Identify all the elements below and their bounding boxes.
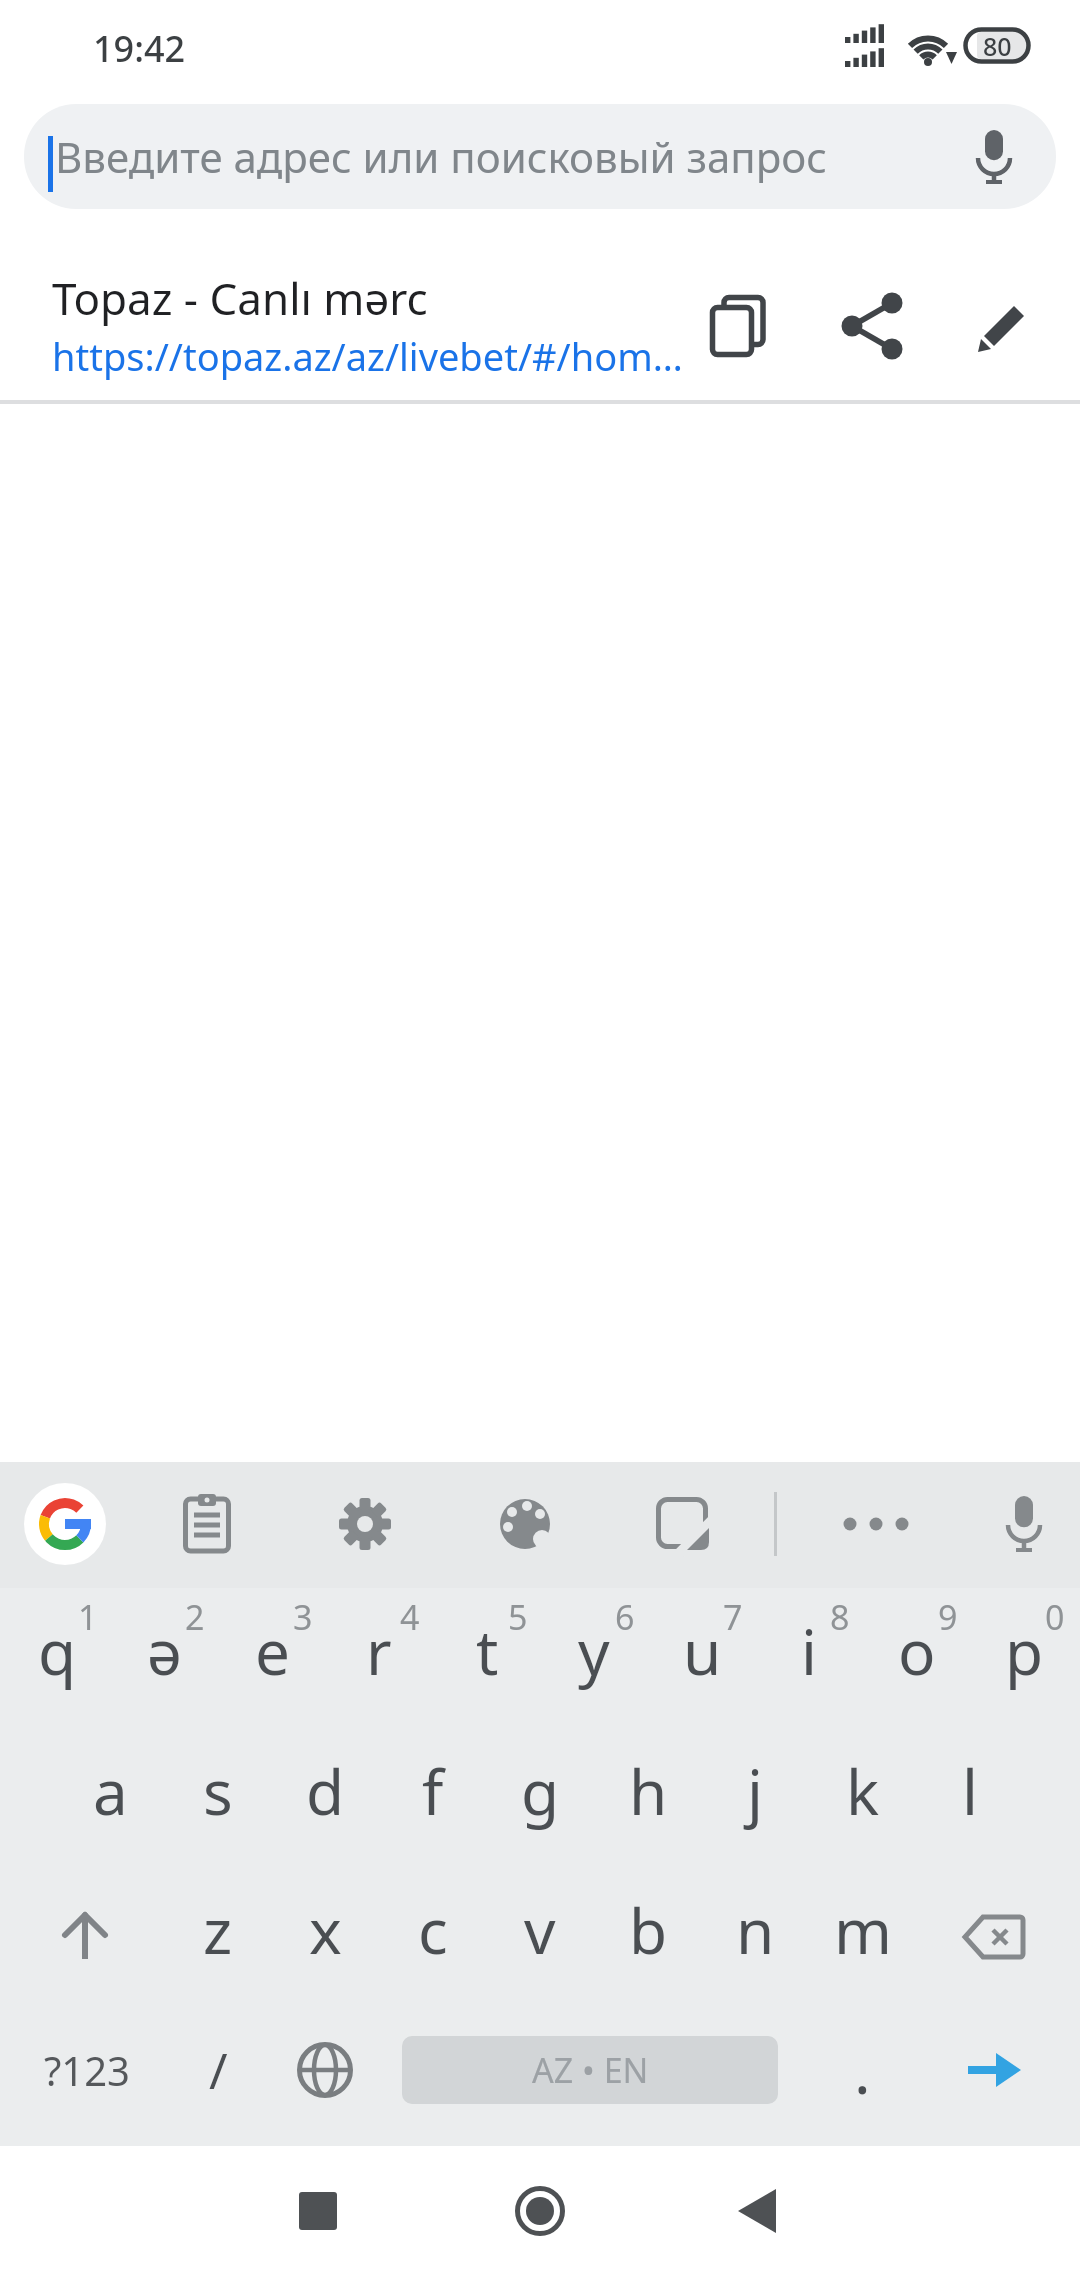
staticText: k bbox=[846, 1749, 880, 1833]
button[interactable]: j bbox=[701, 1721, 809, 1860]
staticText: 1 bbox=[78, 1594, 98, 1634]
staticText: i bbox=[801, 1609, 817, 1693]
button[interactable] bbox=[966, 288, 1042, 364]
staticText: 9 bbox=[938, 1594, 958, 1634]
button[interactable] bbox=[24, 1483, 106, 1565]
button[interactable] bbox=[986, 1486, 1062, 1562]
button[interactable]: u bbox=[648, 1581, 756, 1721]
staticText: f bbox=[422, 1749, 444, 1833]
button[interactable]: h bbox=[594, 1721, 702, 1860]
button[interactable]: z bbox=[164, 1860, 272, 2000]
staticText: y bbox=[578, 1609, 610, 1693]
staticText: 8 bbox=[830, 1594, 850, 1634]
staticText: https://topaz.az/az/livebet/#/hom… bbox=[52, 330, 683, 382]
button[interactable]: k bbox=[809, 1721, 917, 1860]
staticText: l bbox=[962, 1749, 978, 1833]
staticText: p bbox=[1005, 1609, 1044, 1693]
button[interactable] bbox=[291, 2184, 345, 2238]
button[interactable]: c bbox=[379, 1860, 487, 2000]
staticText: g bbox=[521, 1749, 560, 1833]
button[interactable] bbox=[932, 2000, 1056, 2139]
staticText: Topaz - Canlı mərc bbox=[52, 268, 428, 328]
staticText: ?123 bbox=[44, 2043, 130, 2097]
button[interactable]: a bbox=[56, 1721, 164, 1860]
button[interactable]: Введите адрес или поисковый запрос bbox=[24, 104, 1056, 209]
button[interactable]: f bbox=[379, 1721, 487, 1860]
button[interactable]: . bbox=[808, 2000, 916, 2139]
staticText: x bbox=[309, 1888, 342, 1972]
staticText: Введите адрес или поисковый запрос bbox=[55, 128, 828, 185]
button[interactable]: n bbox=[701, 1860, 809, 2000]
staticText: 6 bbox=[615, 1594, 635, 1634]
staticText: q bbox=[38, 1609, 77, 1693]
staticText: / bbox=[209, 2036, 228, 2104]
button[interactable]: e bbox=[218, 1581, 326, 1721]
button[interactable]: d bbox=[271, 1721, 379, 1860]
button[interactable]: s bbox=[164, 1721, 272, 1860]
button[interactable]: g bbox=[486, 1721, 594, 1860]
staticText: 3 bbox=[293, 1594, 313, 1634]
button[interactable] bbox=[700, 288, 776, 364]
staticText: d bbox=[306, 1749, 345, 1833]
button[interactable]: y bbox=[540, 1581, 648, 1721]
button[interactable]: / bbox=[164, 2000, 272, 2139]
button[interactable]: b bbox=[594, 1860, 702, 2000]
button[interactable]: ?123 bbox=[23, 2000, 151, 2139]
staticText: e bbox=[255, 1609, 290, 1693]
button[interactable]: r bbox=[325, 1581, 433, 1721]
staticText: a bbox=[93, 1749, 128, 1833]
button[interactable] bbox=[513, 2184, 567, 2238]
staticText: s bbox=[203, 1749, 233, 1833]
button[interactable]: https://topaz.az/az/livebet/#/hom… bbox=[52, 330, 683, 382]
button[interactable]: i bbox=[755, 1581, 863, 1721]
button[interactable] bbox=[327, 1486, 403, 1562]
staticText: z bbox=[203, 1888, 233, 1972]
staticText: 4 bbox=[400, 1594, 420, 1634]
staticText: m bbox=[834, 1888, 892, 1972]
button[interactable]: t bbox=[433, 1581, 541, 1721]
staticText: 7 bbox=[723, 1594, 743, 1634]
button[interactable] bbox=[972, 129, 1016, 185]
button[interactable] bbox=[730, 2184, 784, 2238]
button[interactable] bbox=[271, 2000, 379, 2139]
button[interactable] bbox=[838, 1486, 914, 1562]
staticText: 80 bbox=[983, 29, 1012, 63]
button[interactable] bbox=[645, 1486, 721, 1562]
staticText: o bbox=[898, 1609, 936, 1693]
button[interactable] bbox=[169, 1486, 245, 1562]
button[interactable]: v bbox=[486, 1860, 594, 2000]
button[interactable] bbox=[24, 1867, 146, 2007]
staticText: b bbox=[629, 1888, 668, 1972]
button[interactable] bbox=[834, 288, 910, 364]
staticText: c bbox=[418, 1888, 448, 1972]
staticText: u bbox=[683, 1609, 722, 1693]
button[interactable] bbox=[932, 1867, 1056, 2007]
button[interactable]: m bbox=[809, 1860, 917, 2000]
staticText: 5 bbox=[508, 1594, 528, 1634]
staticText: v bbox=[524, 1888, 556, 1972]
staticText: n bbox=[736, 1888, 775, 1972]
staticText: ə bbox=[147, 1609, 182, 1693]
staticText: . bbox=[854, 2028, 871, 2112]
staticText: 2 bbox=[185, 1594, 205, 1634]
button[interactable]: ə bbox=[110, 1581, 218, 1721]
button[interactable]: AZ • EN bbox=[402, 2036, 778, 2104]
staticText: 0 bbox=[1045, 1594, 1065, 1634]
button[interactable]: p bbox=[970, 1581, 1078, 1721]
button[interactable] bbox=[487, 1486, 563, 1562]
staticText: 19:42 bbox=[93, 24, 186, 73]
staticText: AZ • EN bbox=[532, 2047, 649, 2093]
button[interactable]: l bbox=[916, 1721, 1024, 1860]
button[interactable]: o bbox=[863, 1581, 971, 1721]
staticText: r bbox=[366, 1609, 392, 1693]
button[interactable]: x bbox=[271, 1860, 379, 2000]
staticText: j bbox=[747, 1749, 763, 1833]
staticText: t bbox=[476, 1609, 499, 1693]
staticText: h bbox=[629, 1749, 668, 1833]
button[interactable]: q bbox=[3, 1581, 111, 1721]
